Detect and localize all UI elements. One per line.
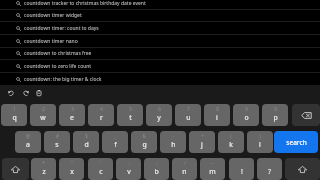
button[interactable]: 5 — [117, 104, 143, 126]
button[interactable]: / — [172, 158, 197, 180]
staticText: n — [182, 167, 187, 176]
button[interactable]: ; — [144, 158, 169, 180]
staticText: z — [42, 167, 46, 176]
button[interactable]: 7 — [175, 104, 201, 126]
staticText: j — [201, 140, 203, 149]
staticText: " — [71, 160, 73, 166]
staticText: h — [171, 140, 176, 149]
staticText: countdown tracker to christmas birthday … — [24, 0, 146, 7]
button[interactable]: 6 — [146, 104, 172, 126]
button[interactable]: 1 — [1, 104, 27, 126]
staticText: / — [184, 160, 186, 166]
staticText: countdown timer nano — [24, 38, 78, 45]
staticText: d — [84, 140, 89, 149]
button[interactable]: Undo — [4, 86, 17, 99]
staticText: r — [100, 113, 103, 122]
button[interactable]: 4 — [88, 104, 114, 126]
staticText: - — [172, 133, 174, 139]
button[interactable]: ' — [88, 158, 113, 180]
button[interactable]: - — [160, 131, 186, 153]
staticText: v — [127, 167, 131, 176]
button[interactable]: Clipboard — [32, 86, 45, 99]
button[interactable]: Redo — [19, 86, 32, 99]
button[interactable]: ( — [218, 131, 244, 153]
staticText: ) — [259, 133, 261, 139]
button[interactable]: search — [274, 131, 318, 153]
button[interactable]: 9 — [233, 104, 259, 126]
button[interactable]: countdown to christmas free — [0, 47, 320, 60]
staticText: q — [12, 113, 17, 122]
staticText: 0 — [274, 106, 277, 112]
staticText: countdown timer: count to days — [24, 25, 99, 32]
staticText: : — [128, 160, 130, 166]
staticText: ( — [230, 133, 232, 139]
button[interactable]: $ — [73, 131, 99, 153]
staticText: & — [142, 133, 146, 139]
button[interactable]: countdown: the big timer & clock — [0, 73, 320, 86]
staticText: 4 — [100, 106, 103, 112]
staticText: 6 — [158, 106, 161, 112]
staticText: a — [26, 140, 30, 149]
staticText: ~ — [211, 160, 214, 166]
staticText: 9 — [245, 106, 248, 112]
staticText: o — [244, 113, 249, 122]
staticText: p — [273, 113, 278, 122]
staticText: 5 — [129, 106, 132, 112]
button[interactable]: countdown timer nano — [0, 35, 320, 48]
staticText: $ — [85, 133, 88, 139]
staticText: ! — [241, 167, 243, 176]
staticText: g — [142, 140, 147, 149]
staticText: c — [99, 167, 103, 176]
button[interactable]: _ — [102, 131, 128, 153]
button[interactable]: ~ — [200, 158, 225, 180]
staticText: countdown: the big timer & clock — [24, 76, 102, 83]
staticText: 8 — [216, 106, 219, 112]
button[interactable]: ? — [257, 158, 282, 180]
staticText: countdown to zero life count — [24, 63, 92, 70]
staticText: 7 — [187, 106, 190, 112]
staticText: countdown to christmas free — [24, 50, 92, 57]
button[interactable]: + — [189, 131, 215, 153]
staticText: ; — [156, 160, 158, 166]
button[interactable]: * — [31, 158, 56, 180]
staticText: ? — [268, 167, 271, 176]
staticText: * — [42, 160, 45, 166]
staticText: 3 — [71, 106, 74, 112]
button[interactable]: @ — [15, 131, 41, 153]
staticText: countdown timer widget — [24, 12, 82, 19]
button[interactable]: 2 — [30, 104, 56, 126]
staticText: m — [209, 167, 216, 176]
button[interactable]: " — [59, 158, 84, 180]
button[interactable]: ) — [247, 131, 273, 153]
button[interactable]: Shift — [2, 158, 29, 180]
button[interactable]: Backspace — [292, 104, 320, 126]
button[interactable]: countdown to zero life count — [0, 60, 320, 73]
staticText: e — [70, 113, 74, 122]
button[interactable]: countdown tracker to christmas birthday … — [0, 0, 320, 10]
staticText: + — [201, 133, 204, 139]
button[interactable]: 8 — [204, 104, 230, 126]
button[interactable]: countdown timer widget — [0, 9, 320, 22]
button[interactable]: 0 — [262, 104, 288, 126]
button[interactable]: countdown timer: count to days — [0, 22, 320, 35]
staticText: @ — [26, 133, 30, 139]
staticText: _ — [114, 133, 116, 139]
staticText: w — [40, 113, 46, 122]
staticText: 2 — [42, 106, 45, 112]
button[interactable]: Shift — [285, 158, 320, 180]
staticText: # — [56, 133, 59, 139]
button[interactable]: & — [131, 131, 157, 153]
staticText: t — [129, 113, 132, 122]
staticText: k — [229, 140, 233, 149]
staticText: y — [157, 113, 161, 122]
staticText: x — [70, 167, 74, 176]
staticText: b — [154, 167, 159, 176]
staticText: u — [186, 113, 191, 122]
button[interactable]: # — [44, 131, 70, 153]
staticText: f — [114, 140, 117, 149]
staticText: 1 — [13, 106, 16, 112]
button[interactable]: : — [116, 158, 141, 180]
staticText: i — [216, 113, 218, 122]
button[interactable]: 3 — [59, 104, 85, 126]
button[interactable]: ! — [229, 158, 254, 180]
